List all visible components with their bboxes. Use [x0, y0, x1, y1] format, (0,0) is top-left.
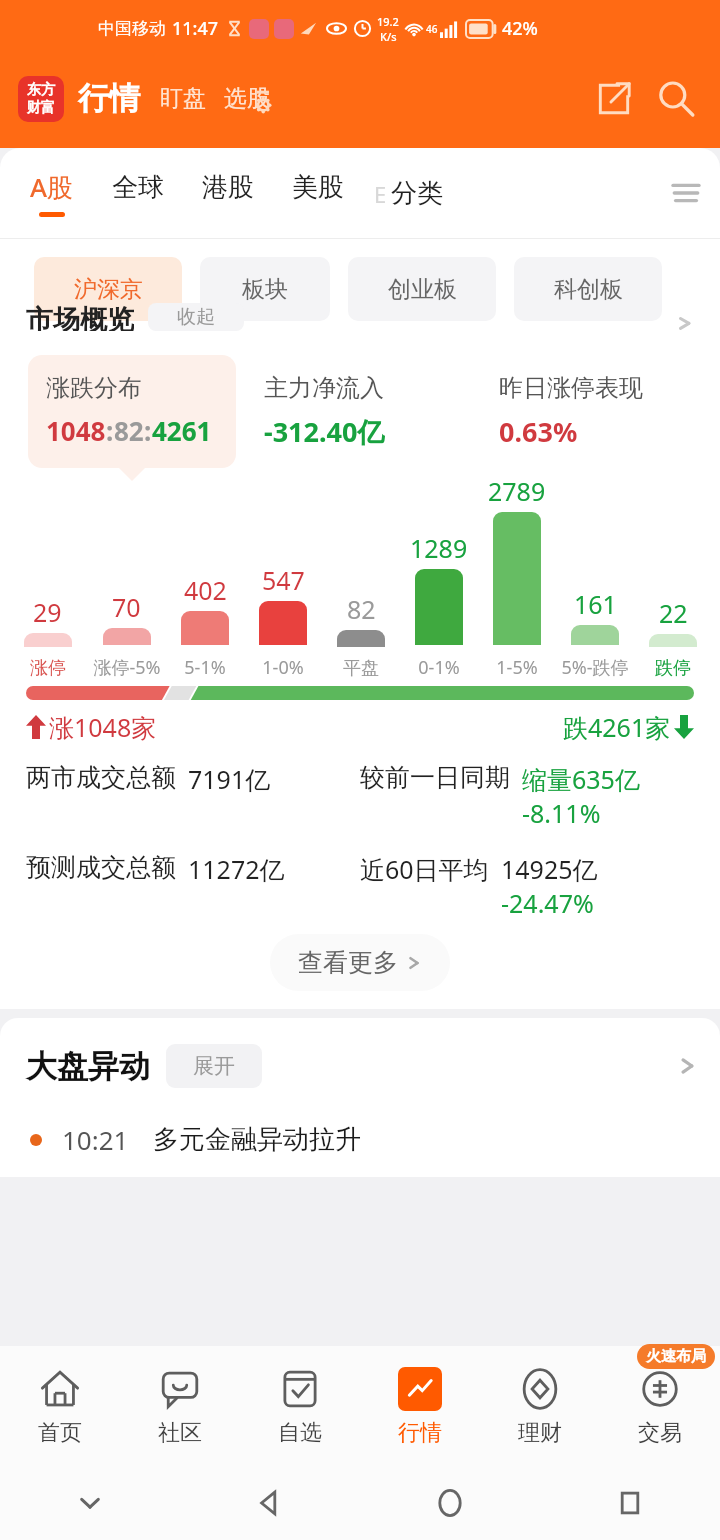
button[interactable]: 首页 — [0, 1346, 120, 1466]
button[interactable]: 82 — [322, 470, 400, 680]
staticText: 0-1% — [418, 655, 460, 680]
staticText: 涨跌分布 — [46, 373, 142, 403]
button[interactable]: Share — [586, 71, 642, 127]
button[interactable]: 自选 — [240, 1346, 360, 1466]
button[interactable]: More tabs — [660, 167, 712, 219]
staticText: E — [374, 179, 387, 209]
staticText: 两市成交总额 — [26, 762, 176, 793]
button[interactable]: East Money logo — [18, 76, 64, 122]
button[interactable]: 10:21 — [0, 1088, 720, 1177]
button[interactable]: 交易 — [600, 1346, 720, 1466]
button[interactable]: 选股 — [224, 84, 270, 113]
button[interactable]: 港股 — [202, 171, 254, 216]
staticText: 选股 — [224, 84, 270, 113]
staticText: 中国移动 — [98, 18, 166, 39]
button[interactable]: 1289 — [400, 470, 478, 680]
staticText: 收起 — [177, 305, 215, 329]
button[interactable]: 盯盘 — [160, 84, 206, 113]
staticText: 火速布局 — [646, 1347, 706, 1366]
staticText: 首页 — [38, 1419, 82, 1447]
button[interactable]: Home — [360, 1466, 540, 1540]
button[interactable]: 全球 — [112, 171, 164, 216]
button[interactable]: 161 — [556, 470, 634, 680]
staticText: 0.63% — [499, 413, 578, 450]
staticText: 平盘 — [343, 657, 379, 680]
button[interactable]: 沪深京 — [34, 257, 182, 321]
button[interactable]: A股 — [30, 169, 74, 217]
staticText: 理财 — [518, 1419, 562, 1447]
button[interactable]: E — [374, 177, 443, 210]
staticText: 5%-跌停 — [561, 655, 629, 680]
button[interactable]: 22 — [634, 470, 712, 680]
staticText: 昨日涨停表现 — [499, 373, 643, 403]
button[interactable]: 美股 — [292, 171, 344, 216]
staticText: 涨停-5% — [93, 655, 161, 680]
button[interactable]: 查看更多 — [270, 934, 450, 991]
button[interactable]: 大盘异动 — [0, 1018, 720, 1088]
staticText: : — [106, 413, 114, 448]
button[interactable]: 涨跌分布 — [28, 355, 236, 468]
staticText: 14925亿 — [501, 852, 598, 886]
staticText: 82 — [114, 413, 144, 448]
staticText: 分类 — [391, 177, 443, 210]
staticText: 查看更多 — [298, 947, 398, 978]
staticText: K/s — [380, 29, 397, 44]
button[interactable]: 70 — [87, 470, 166, 680]
staticText: 近60日平均 — [360, 852, 489, 886]
button[interactable]: 2789 — [478, 470, 556, 680]
button[interactable]: Back — [180, 1466, 360, 1540]
staticText: 大盘异动 — [26, 1047, 150, 1086]
staticText: 港股 — [202, 171, 254, 204]
staticText: 1289 — [410, 531, 468, 565]
staticText: 市场概览 — [26, 303, 134, 331]
staticText: 46 — [426, 22, 438, 36]
staticText: 缩量635亿 — [522, 762, 640, 796]
button[interactable]: 社区 — [120, 1346, 240, 1466]
staticText: 跌4261家 — [563, 710, 671, 744]
button[interactable]: 402 — [166, 470, 244, 680]
button[interactable]: 行情 — [360, 1346, 480, 1466]
button[interactable]: 板块 — [200, 257, 330, 321]
button[interactable]: 昨日涨停表现 — [485, 355, 706, 470]
button[interactable]: 创业板 — [348, 257, 496, 321]
staticText: -24.47% — [501, 886, 594, 920]
staticText: 涨停 — [30, 657, 66, 680]
button[interactable]: 展开 — [166, 1044, 262, 1088]
staticText: 2789 — [488, 474, 546, 508]
staticText: 行情 — [398, 1419, 442, 1447]
button[interactable]: Recents — [540, 1466, 720, 1540]
staticText: 跌停 — [655, 657, 691, 680]
staticText: 较前一日同期 — [360, 762, 510, 793]
button[interactable]: 科创板 — [514, 257, 662, 321]
staticText: 涨1048家 — [49, 710, 157, 744]
staticText: 82 — [347, 592, 376, 626]
staticText: 42% — [502, 16, 538, 41]
button[interactable]: 主力净流入 — [250, 355, 471, 470]
staticText: 11272亿 — [188, 852, 285, 886]
staticText: 10:21 — [62, 1122, 129, 1157]
staticText: 预测成交总额 — [26, 852, 176, 883]
staticText: 美股 — [292, 171, 344, 204]
button[interactable]: Hide keyboard — [0, 1466, 180, 1540]
staticText: 161 — [574, 587, 617, 621]
staticText: 社区 — [158, 1419, 202, 1447]
staticText: 4261 — [152, 413, 212, 448]
staticText: 多元金融异动拉升 — [153, 1123, 361, 1156]
button[interactable]: 29 — [8, 470, 87, 680]
button[interactable]: Search — [648, 71, 704, 127]
staticText: 沪深京 — [74, 275, 143, 304]
staticText: 402 — [184, 573, 227, 607]
staticText: 70 — [112, 590, 141, 624]
staticText: 自选 — [278, 1419, 322, 1447]
staticText: -312.40亿 — [264, 413, 385, 450]
button[interactable]: 行情 — [78, 79, 140, 118]
staticText: 东方 — [27, 81, 55, 99]
staticText: 科创板 — [554, 275, 623, 304]
staticText: 创业板 — [388, 275, 457, 304]
staticText: 交易 — [638, 1419, 682, 1447]
button[interactable]: 547 — [244, 470, 322, 680]
staticText: 19.2 — [377, 14, 399, 29]
button[interactable]: 理财 — [480, 1346, 600, 1466]
staticText: 板块 — [242, 275, 288, 304]
staticText: 1-0% — [262, 655, 304, 680]
